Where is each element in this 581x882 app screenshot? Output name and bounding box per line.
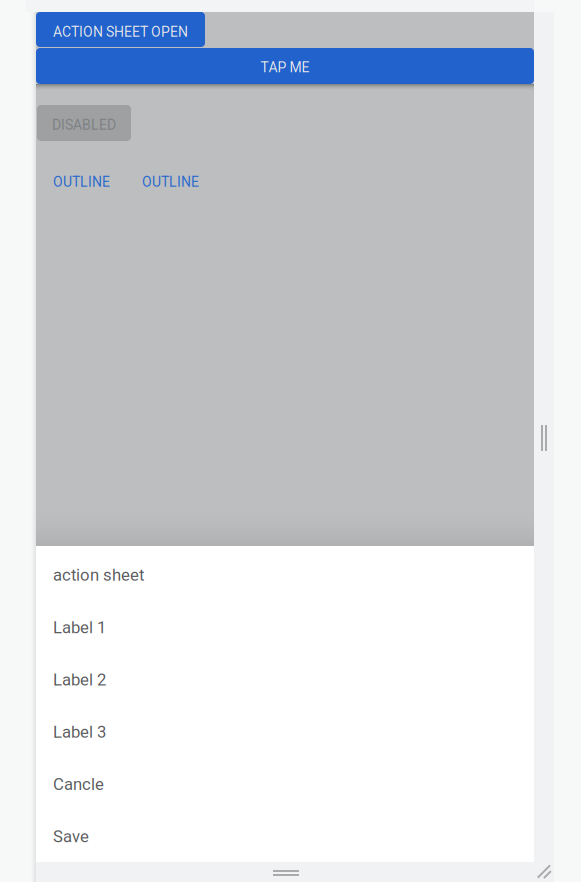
staticText: Label 1: [53, 618, 106, 637]
staticText: TAP ME: [260, 59, 309, 76]
staticText: Label 3: [53, 722, 106, 742]
button[interactable]: Resize width: [541, 425, 547, 451]
staticText: action sheet: [53, 565, 144, 585]
button[interactable]: OUTLINE: [126, 164, 215, 200]
button[interactable]: action sheet: [36, 549, 534, 601]
staticText: DISABLED: [52, 117, 116, 133]
staticText: Save: [53, 827, 89, 846]
button[interactable]: ACTION SHEET OPEN: [36, 12, 205, 47]
staticText: Label 2: [53, 670, 106, 689]
staticText: OUTLINE: [53, 174, 110, 190]
staticText: ACTION SHEET OPEN: [53, 24, 188, 40]
button[interactable]: Label 2: [36, 654, 534, 706]
staticText: OUTLINE: [142, 174, 199, 190]
button[interactable]: Save: [36, 810, 534, 863]
button[interactable]: DISABLED: [37, 105, 131, 141]
button[interactable]: Label 1: [36, 601, 534, 654]
button[interactable]: Resize height: [273, 870, 299, 876]
button[interactable]: Resize: [537, 864, 553, 880]
button[interactable]: TAP ME: [36, 48, 534, 84]
button[interactable]: Label 3: [36, 706, 534, 758]
staticText: Cancle: [53, 775, 104, 794]
button[interactable]: Cancle: [36, 758, 534, 810]
button[interactable]: OUTLINE: [37, 164, 126, 200]
